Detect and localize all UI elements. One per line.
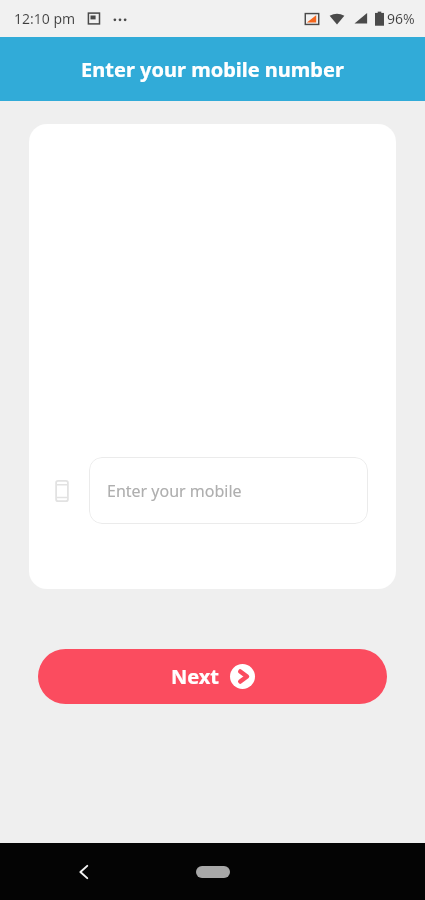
staticText: Next bbox=[171, 663, 220, 690]
button[interactable]: Enter your mobile bbox=[89, 457, 368, 524]
button[interactable]: Next bbox=[38, 649, 387, 704]
button[interactable]: Home bbox=[178, 857, 248, 887]
button[interactable]: Back bbox=[62, 850, 106, 894]
staticText: Enter your mobile bbox=[107, 480, 242, 502]
staticText: 12:10 pm bbox=[14, 9, 76, 28]
staticText: 96% bbox=[387, 9, 415, 28]
staticText: Enter your mobile number bbox=[81, 56, 344, 83]
